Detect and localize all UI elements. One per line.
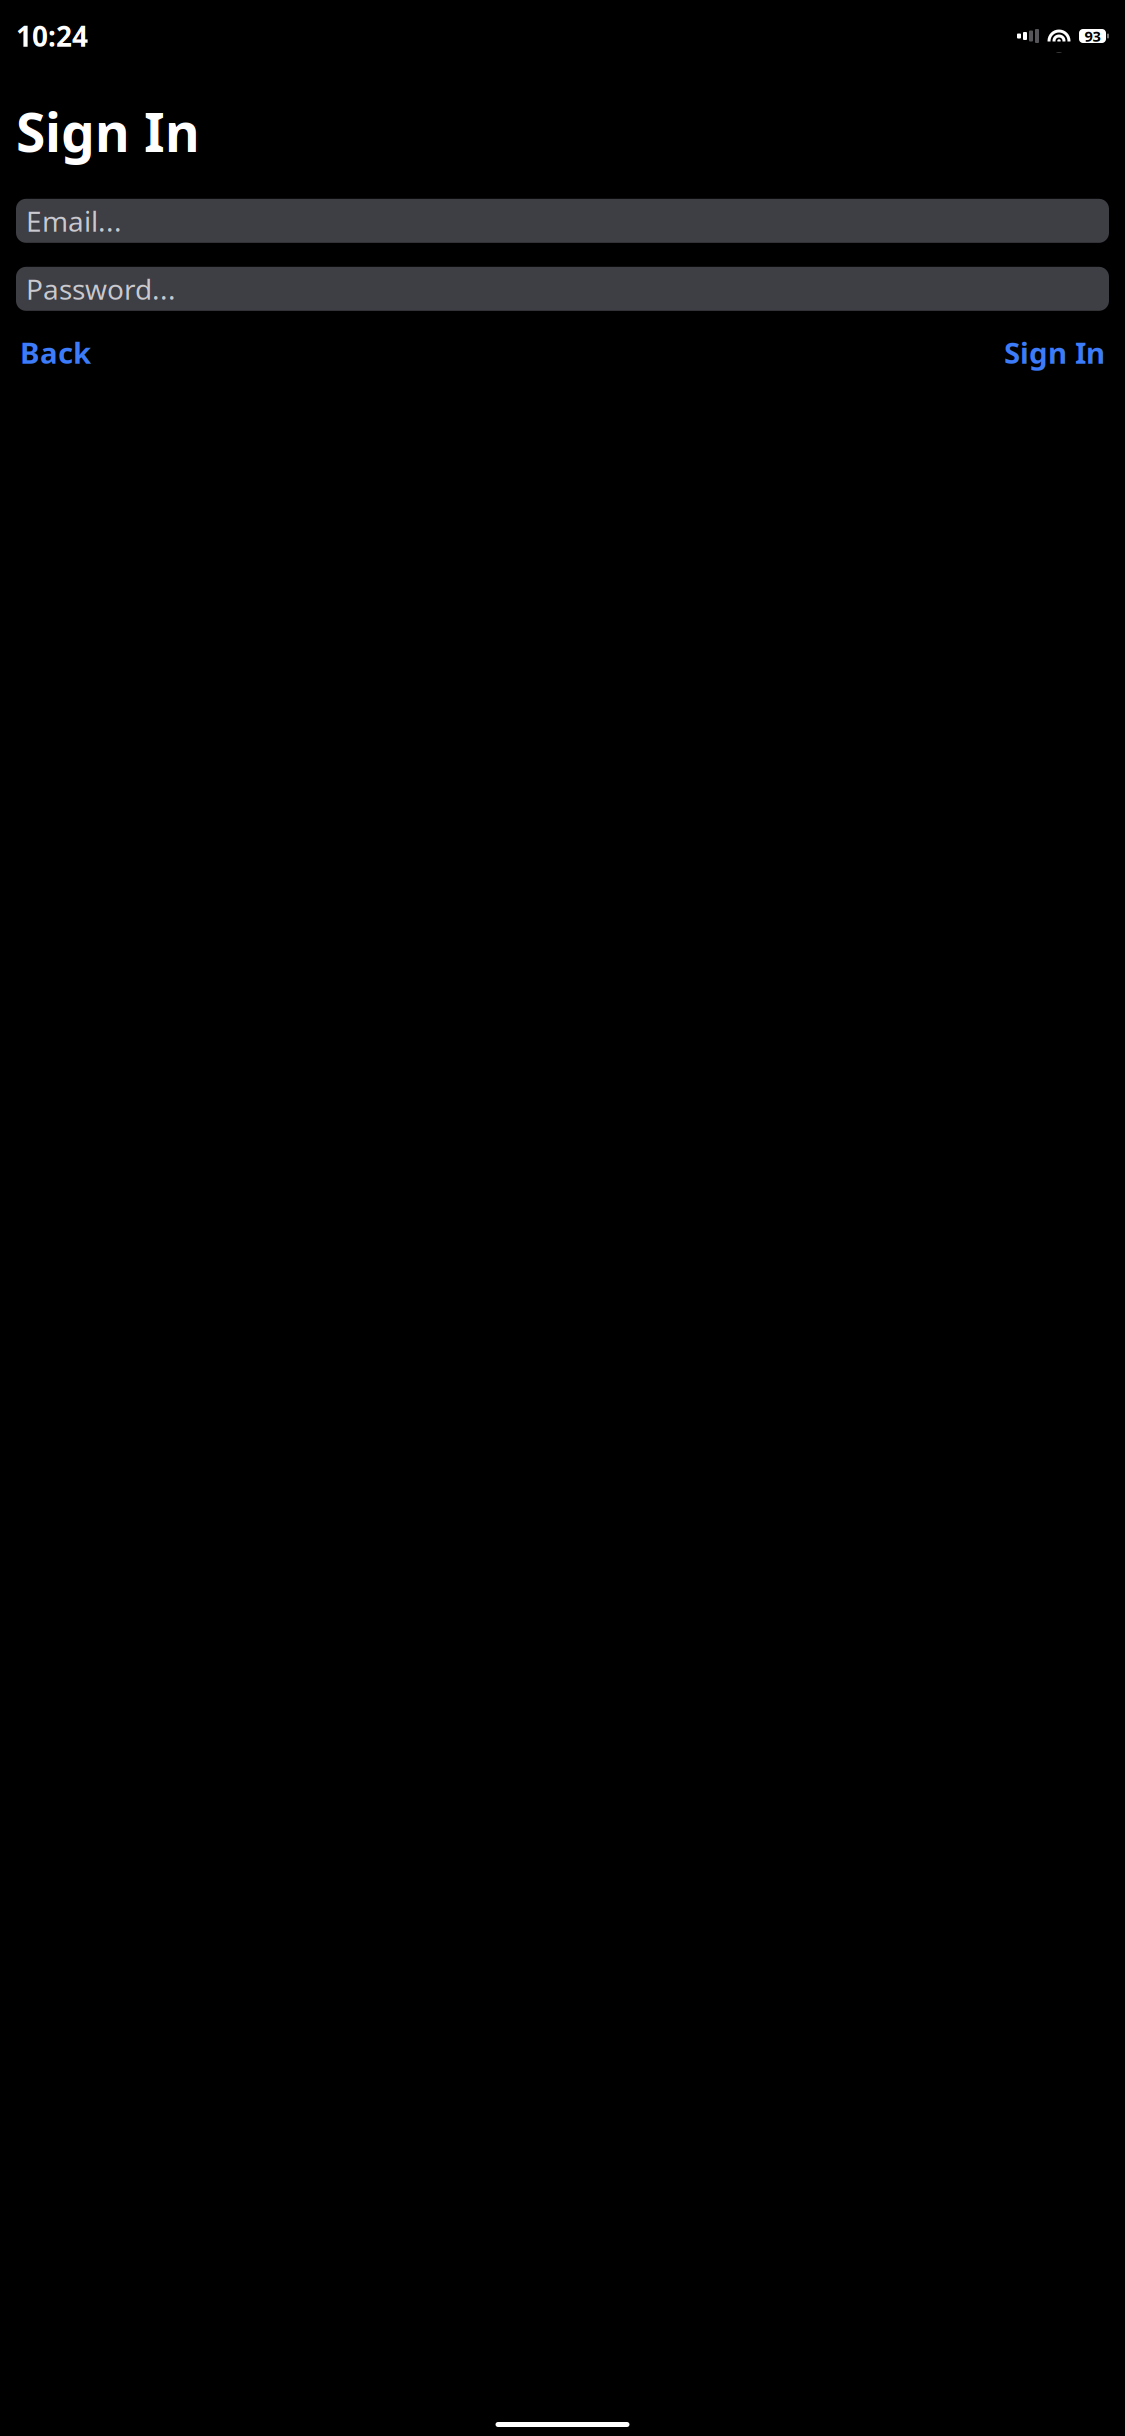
button[interactable]: Email... (16, 199, 1109, 243)
staticText: Sign In (16, 96, 200, 167)
staticText: 93 (1084, 26, 1100, 46)
button[interactable]: Sign In (1000, 323, 1109, 382)
staticText: Sign In (1004, 333, 1105, 372)
button[interactable]: Back (16, 323, 95, 382)
staticText: Email... (26, 202, 122, 239)
staticText: 10:24 (16, 17, 88, 55)
staticText: Back (20, 333, 91, 372)
staticText: Password... (26, 270, 176, 307)
button[interactable]: Password... (16, 267, 1109, 311)
